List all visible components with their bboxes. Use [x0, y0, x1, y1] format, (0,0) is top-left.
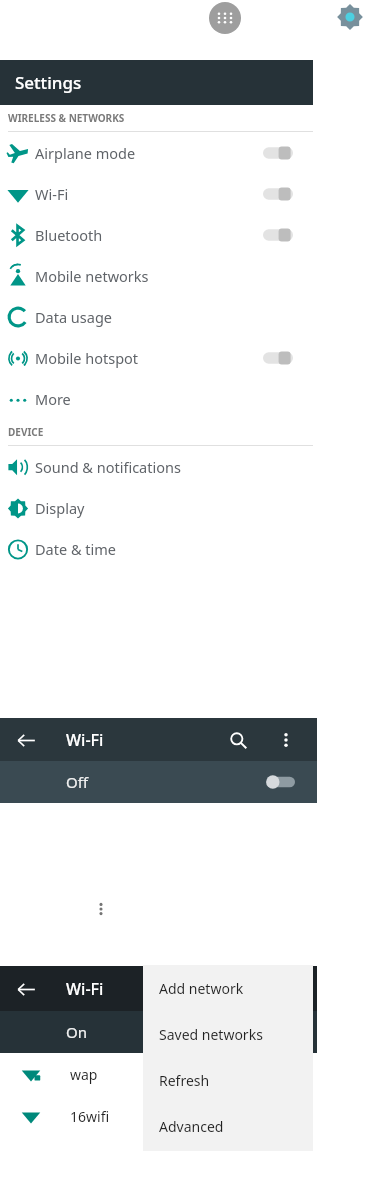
button[interactable]: Mobile hotspot	[0, 337, 313, 378]
button[interactable]: More	[0, 378, 313, 419]
button[interactable]: 16wifi	[0, 1095, 317, 1137]
staticText: Mobile hotspot	[35, 348, 139, 368]
button[interactable]: Add network	[143, 965, 313, 1011]
button[interactable]: Display	[0, 487, 313, 528]
button[interactable]: Sound & notifications	[0, 446, 313, 487]
staticText: Refresh	[159, 1071, 210, 1090]
button[interactable]: Date & time	[0, 528, 313, 569]
button[interactable]: Saved networks	[143, 1011, 313, 1057]
button[interactable]: Data usage	[0, 296, 313, 337]
button[interactable]: Refresh	[143, 1057, 313, 1103]
button[interactable]: Settings	[335, 2, 365, 32]
staticText: Airplane mode	[35, 143, 136, 163]
button[interactable]: Overflow	[90, 898, 112, 920]
staticText: Display	[35, 498, 85, 518]
staticText: Bluetooth	[35, 225, 103, 245]
button[interactable]: Advanced	[143, 1103, 313, 1149]
staticText: Wi-Fi	[35, 184, 69, 204]
button[interactable]: Bluetooth	[0, 214, 313, 255]
button[interactable]: Mobile networks	[0, 255, 313, 296]
staticText: Add network	[159, 979, 244, 998]
staticText: 16wifi	[70, 1107, 110, 1126]
staticText: Wi-Fi	[66, 978, 104, 1000]
button[interactable]: Wi-Fi	[0, 173, 313, 214]
staticText: Date & time	[35, 539, 116, 559]
button[interactable]: Search	[221, 723, 255, 757]
button[interactable]: Back	[8, 722, 44, 758]
staticText: Mobile networks	[35, 266, 149, 286]
button[interactable]: Apps	[209, 2, 241, 34]
staticText: Wi-Fi	[66, 729, 104, 751]
staticText: More	[35, 389, 71, 409]
button[interactable]: Off	[0, 761, 317, 803]
button[interactable]: Back	[8, 971, 44, 1007]
staticText: Data usage	[35, 307, 112, 327]
staticText: On	[66, 1022, 87, 1042]
staticText: Settings	[15, 71, 82, 94]
staticText: DEVICE	[8, 425, 44, 439]
staticText: Off	[66, 772, 89, 792]
button[interactable]: Settings	[0, 60, 313, 105]
button[interactable]: More options	[271, 725, 301, 755]
staticText: Saved networks	[159, 1025, 263, 1044]
staticText: WIRELESS & NETWORKS	[8, 111, 125, 125]
button[interactable]: On	[0, 1011, 317, 1053]
staticText: Advanced	[159, 1117, 224, 1136]
staticText: wap	[70, 1065, 98, 1084]
button[interactable]: Airplane mode	[0, 132, 313, 173]
staticText: Sound & notifications	[35, 457, 181, 477]
button[interactable]: wap	[0, 1053, 317, 1095]
